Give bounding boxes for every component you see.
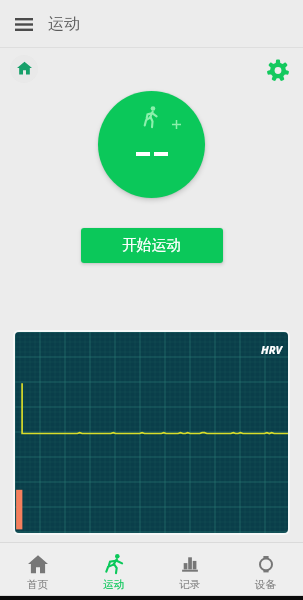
staticText: 首页 [27,578,48,591]
staticText: 运动 [103,578,124,591]
button[interactable]: 首页 [0,543,75,595]
staticText: 运动 [48,14,80,34]
button[interactable]: Home [10,55,38,83]
button[interactable]: Menu [9,9,39,39]
staticText: 记录 [179,578,200,591]
button[interactable]: 设备 [227,543,303,595]
button[interactable]: 开始运动 [81,228,223,263]
staticText: HRV [261,342,283,357]
staticText: 开始运动 [122,236,182,255]
staticText: 设备 [255,578,276,591]
button[interactable]: 运动 [75,543,151,595]
button[interactable] [98,91,205,198]
button[interactable]: Settings [264,55,292,83]
button[interactable]: 记录 [151,543,227,595]
button[interactable]: HRV [15,332,288,533]
